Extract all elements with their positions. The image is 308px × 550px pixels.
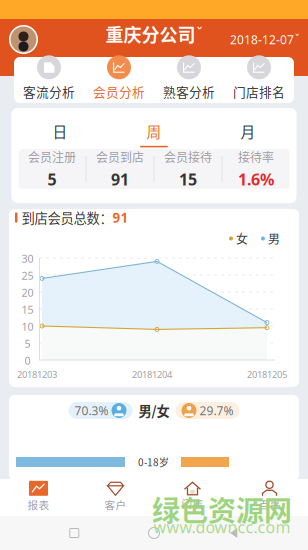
- staticText: www.downcc.com: [153, 516, 290, 538]
- staticText: 10: [21, 319, 33, 334]
- staticText: 会员注册: [28, 148, 76, 166]
- staticText: 会员接待: [164, 148, 212, 166]
- staticText: 绿色资源网: [152, 489, 292, 529]
- button[interactable]: 熟客分析: [154, 57, 224, 103]
- staticText: 重庆分公司: [105, 21, 195, 47]
- button[interactable]: 月: [201, 113, 295, 149]
- staticText: 29.7%: [199, 402, 233, 418]
- staticText: 20181205: [247, 368, 287, 381]
- staticText: 客流分析: [23, 82, 75, 101]
- staticText: 0: [24, 353, 30, 368]
- staticText: 25: [21, 268, 33, 283]
- button[interactable]: 会员分析: [84, 57, 154, 103]
- staticText: 到店会员总数：: [21, 208, 112, 227]
- button[interactable]: 重庆分公司: [105, 23, 202, 45]
- staticText: ˇ: [196, 23, 202, 42]
- staticText: 会员到店: [96, 148, 144, 166]
- staticText: 女: [236, 230, 248, 247]
- staticText: 男: [268, 230, 280, 247]
- staticText: 91: [111, 169, 129, 190]
- staticText: 百事: [258, 497, 280, 512]
- staticText: 客户: [104, 497, 126, 512]
- staticText: 20: [21, 285, 33, 300]
- staticText: 周: [146, 121, 161, 142]
- staticText: 2018-12-07: [230, 31, 294, 47]
- button[interactable]: 门店排名: [224, 57, 294, 103]
- staticText: 70.3%: [74, 402, 108, 418]
- staticText: 熟客分析: [163, 82, 215, 101]
- staticText: 5: [24, 336, 30, 351]
- button[interactable]: Profile: [0, 25, 38, 54]
- staticText: ˇ: [295, 31, 299, 46]
- staticText: 门店: [181, 495, 203, 511]
- button[interactable]: 报表: [0, 479, 77, 516]
- button[interactable]: 客户: [77, 479, 154, 516]
- button[interactable]: 周: [107, 113, 201, 149]
- button[interactable]: 2018-12-07: [230, 29, 308, 49]
- staticText: 15: [21, 302, 33, 317]
- button[interactable]: 门店: [154, 479, 231, 516]
- staticText: 20181203: [17, 368, 57, 381]
- staticText: 5: [47, 169, 56, 190]
- staticText: 门店排名: [233, 82, 285, 101]
- staticText: 1.6%: [238, 169, 274, 190]
- staticText: 会员分析: [93, 82, 145, 101]
- staticText: 月: [240, 121, 255, 142]
- staticText: 91: [112, 209, 128, 226]
- staticText: 日: [52, 121, 67, 142]
- staticText: 报表: [27, 497, 49, 512]
- button[interactable]: 客流分析: [14, 57, 84, 103]
- staticText: 0-18岁: [138, 455, 169, 469]
- button[interactable]: 百事: [231, 479, 308, 516]
- button[interactable]: 日: [13, 113, 107, 149]
- staticText: 15: [179, 169, 197, 190]
- staticText: 男/女: [138, 401, 169, 420]
- staticText: 接待率: [238, 148, 274, 166]
- staticText: 20181204: [132, 368, 172, 381]
- staticText: 30: [21, 251, 33, 266]
